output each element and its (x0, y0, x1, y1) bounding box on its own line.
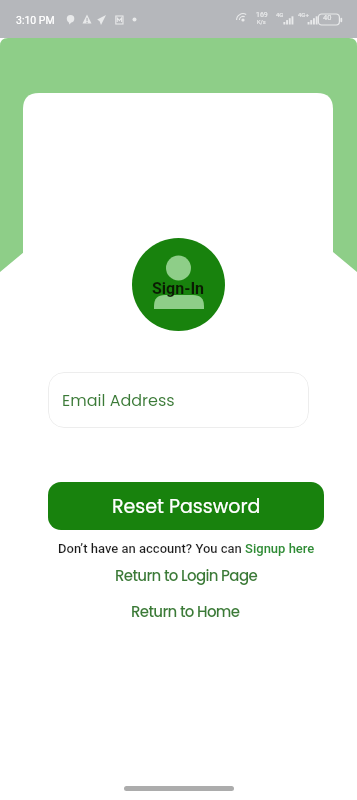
staticText: 4G+ (298, 11, 309, 18)
staticText: 4G (276, 11, 284, 18)
staticText: 169 (256, 11, 268, 19)
staticText: K/s (257, 19, 266, 25)
staticText: Email Address (62, 389, 175, 411)
staticText: Reset Password (112, 493, 261, 520)
staticText: 3:10 PM (16, 14, 55, 26)
button[interactable]: Sign-In (132, 238, 225, 331)
button[interactable]: Don’t have an account? You can Signup he… (58, 541, 315, 556)
button[interactable]: Email Address (48, 372, 309, 428)
staticText: Sign-In (152, 279, 205, 298)
button[interactable]: Return to Home (131, 601, 240, 622)
staticText: 40 (323, 13, 332, 22)
button[interactable]: Reset Password (48, 482, 324, 530)
button[interactable]: Return to Login Page (115, 565, 258, 586)
